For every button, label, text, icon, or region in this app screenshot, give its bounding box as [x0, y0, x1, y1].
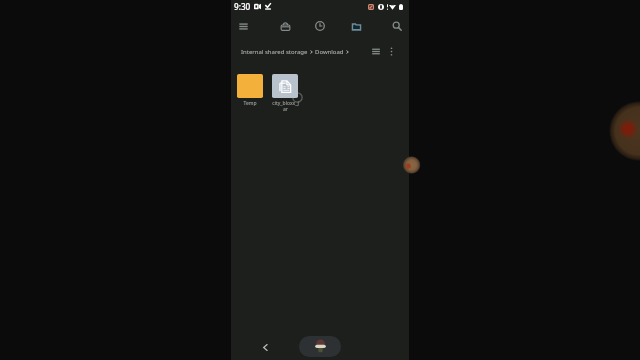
- button[interactable]: Floating bubble: [402, 155, 409, 175]
- button[interactable]: Browse files: [345, 15, 367, 37]
- staticText: 9:30: [234, 1, 251, 12]
- button[interactable]: city_bloxx_j ar: [269, 74, 301, 113]
- button[interactable]: Home: [299, 336, 341, 357]
- button[interactable]: Work profile: [274, 15, 296, 37]
- button[interactable]: Temp: [234, 74, 266, 107]
- staticText: Download: [315, 48, 344, 56]
- button[interactable]: Menu: [232, 15, 254, 37]
- button[interactable]: Back: [257, 339, 273, 355]
- staticText: Internal shared storage: [241, 48, 308, 56]
- button[interactable]: Recent: [309, 15, 331, 37]
- button[interactable]: Search: [386, 15, 408, 37]
- staticText: Temp: [243, 100, 257, 107]
- button[interactable]: More options: [384, 44, 399, 59]
- button[interactable]: List view: [368, 44, 383, 59]
- button[interactable]: Internal shared storage: [241, 48, 351, 56]
- staticText: city_bloxx_j ar: [272, 100, 299, 113]
